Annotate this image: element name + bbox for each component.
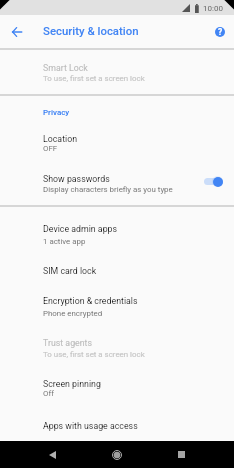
button[interactable] — [0, 96, 234, 122]
staticText: To use, first set a screen lock — [43, 74, 145, 83]
button[interactable] — [0, 122, 234, 161]
button[interactable] — [0, 326, 234, 365]
button[interactable] — [0, 162, 234, 201]
staticText: Show passwords — [43, 174, 110, 184]
staticText: Apps with usage access — [43, 421, 138, 431]
staticText: Trust agents — [43, 338, 93, 348]
staticText: Smart Lock — [43, 63, 88, 73]
staticText: Encryption & credentials — [43, 296, 138, 306]
button[interactable]: Navigate up — [6, 21, 28, 43]
button[interactable] — [0, 367, 234, 406]
staticText: 10:00 — [203, 4, 223, 13]
staticText: Device admin apps — [43, 224, 118, 234]
staticText: SIM card lock — [43, 266, 97, 276]
button[interactable] — [0, 409, 234, 439]
button[interactable] — [0, 51, 234, 91]
staticText: ? — [218, 27, 223, 37]
staticText: To use, first set a screen lock — [43, 350, 145, 359]
staticText: Location — [43, 134, 78, 144]
button[interactable]: Recent apps — [168, 441, 195, 468]
staticText: 1 active app — [43, 237, 86, 246]
staticText: Privacy — [43, 108, 70, 117]
button[interactable] — [0, 284, 234, 324]
button[interactable]: Back — [39, 441, 66, 468]
staticText: OFF — [43, 144, 58, 153]
button[interactable] — [0, 212, 234, 253]
button[interactable]: Home — [103, 441, 130, 468]
staticText: Display characters briefly as you type — [43, 185, 173, 194]
staticText: Screen pinning — [43, 379, 101, 389]
staticText: Phone encrypted — [43, 309, 103, 318]
button[interactable] — [0, 254, 234, 284]
staticText: Security & location — [43, 24, 139, 37]
button[interactable]: Help — [209, 21, 231, 43]
staticText: Off — [43, 389, 54, 398]
